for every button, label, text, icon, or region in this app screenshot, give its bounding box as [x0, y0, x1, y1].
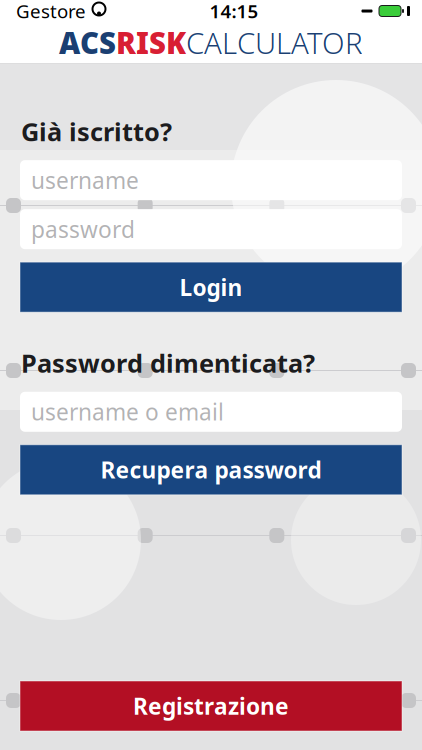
staticText: password	[31, 214, 135, 244]
staticText: username	[31, 165, 139, 195]
staticText: Login	[179, 272, 242, 302]
button[interactable]: Login	[20, 262, 402, 312]
staticText: username o email	[31, 397, 224, 427]
staticText: Già iscritto?	[21, 114, 172, 148]
staticText: Password dimenticata?	[21, 346, 315, 380]
button[interactable]: Recupera password	[20, 445, 402, 495]
staticText: CALCULATOR	[186, 23, 363, 62]
button[interactable]: Registrazione	[20, 681, 402, 731]
staticText: 14:15	[209, 0, 258, 23]
staticText: Recupera password	[100, 455, 321, 485]
staticText: ACS	[59, 23, 116, 62]
staticText: Registrazione	[133, 691, 289, 721]
staticText: Gestore	[16, 0, 86, 23]
staticText: RISK	[116, 23, 186, 62]
